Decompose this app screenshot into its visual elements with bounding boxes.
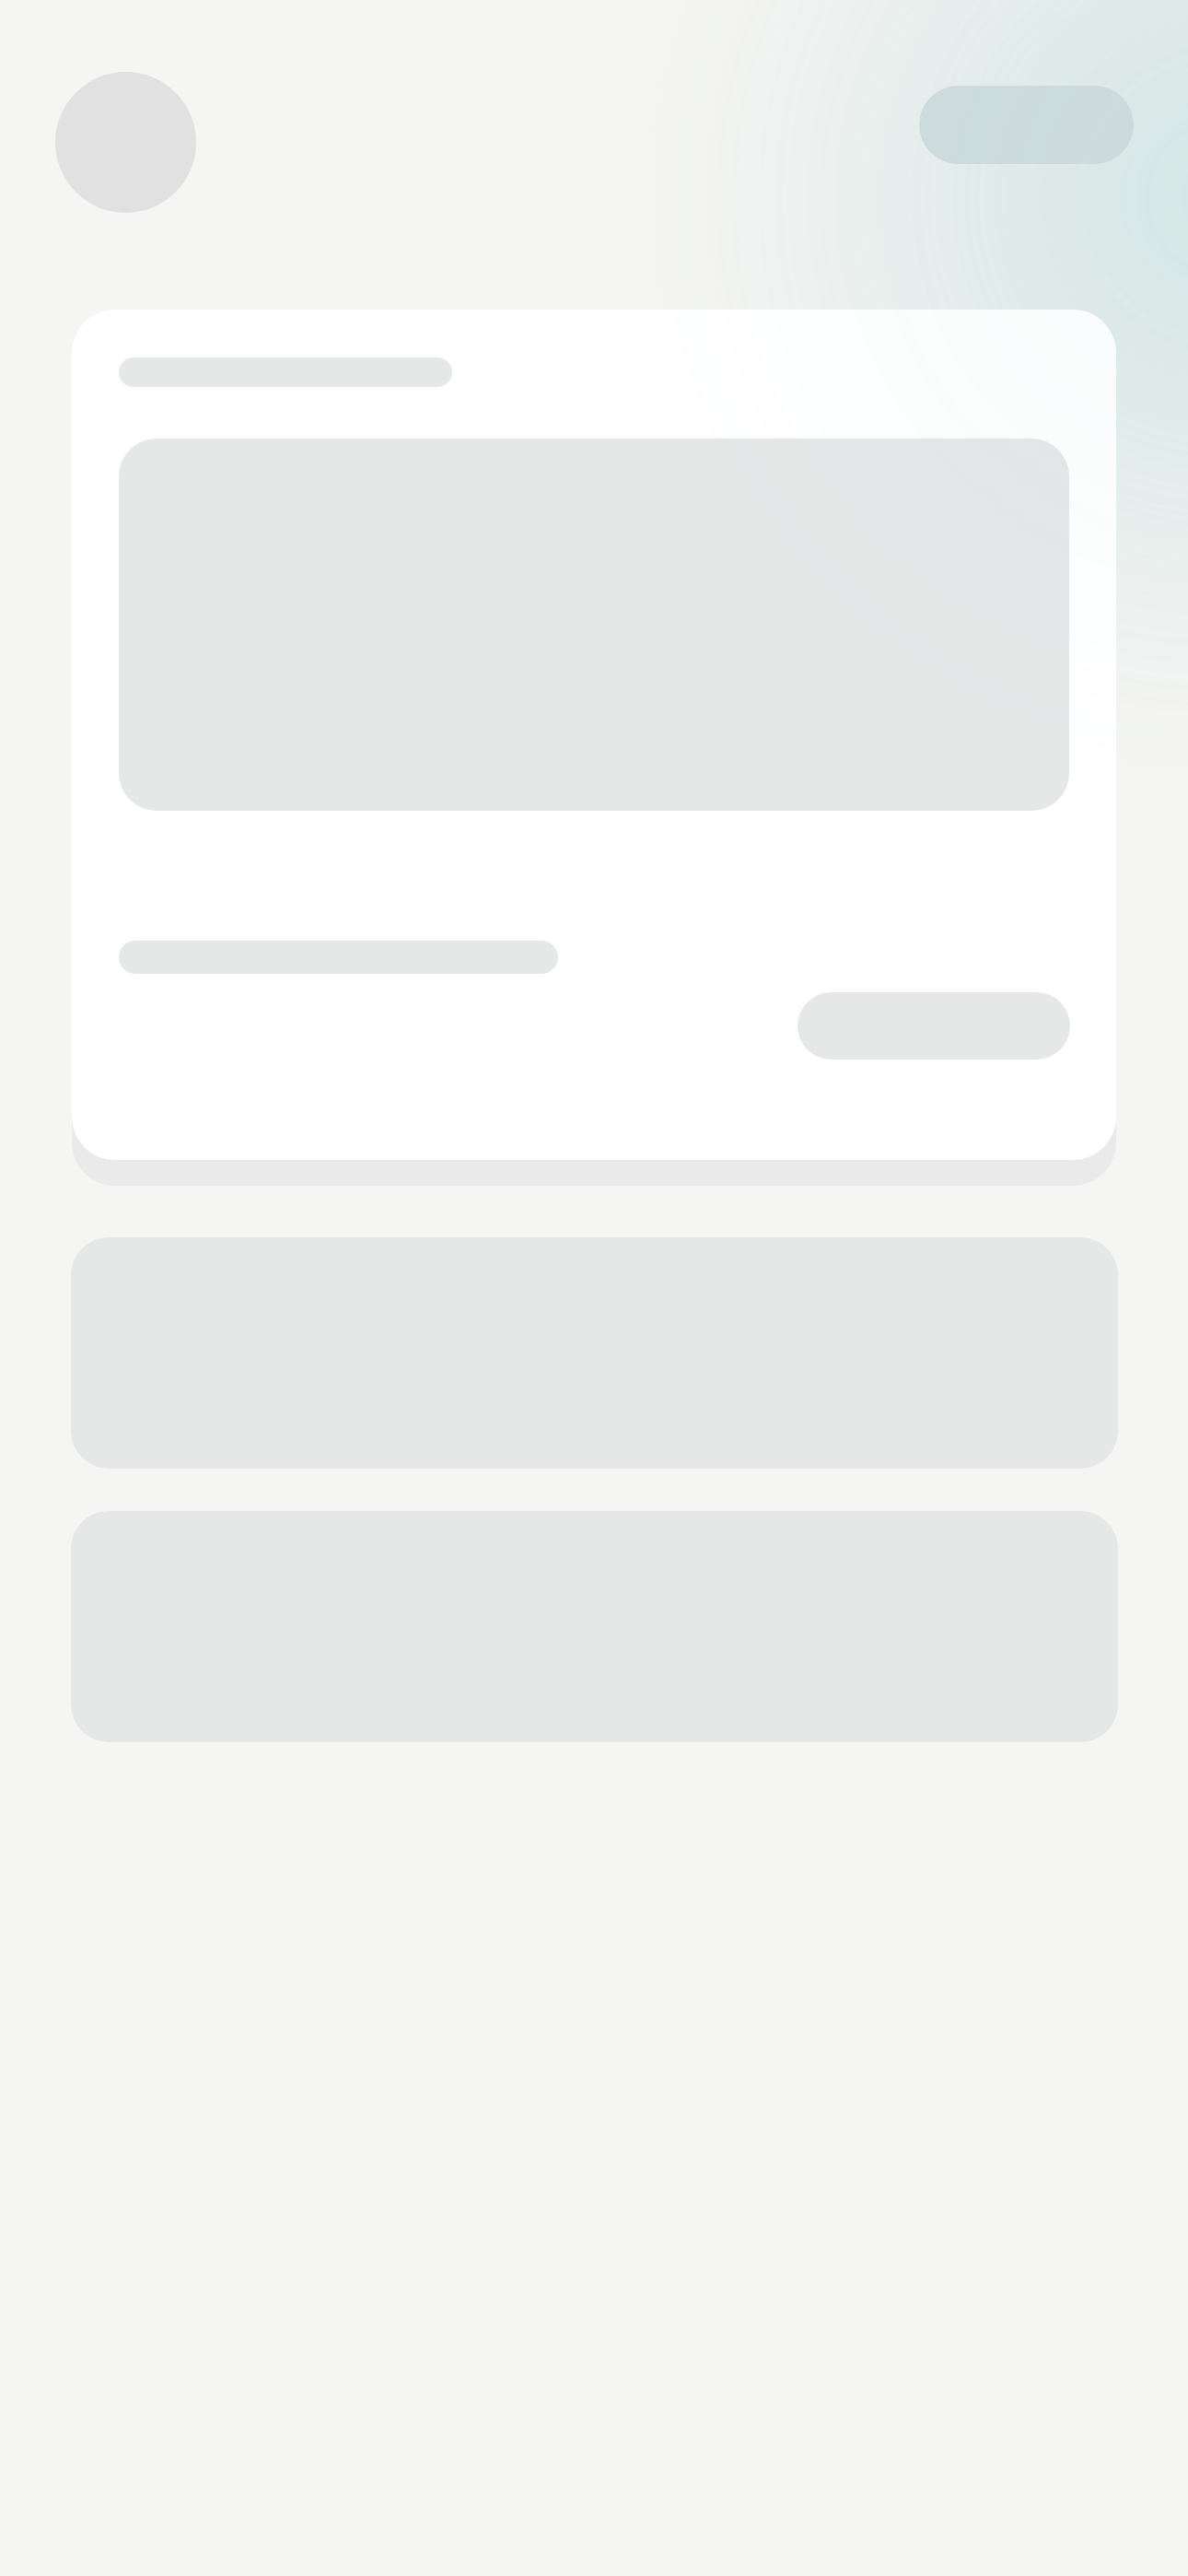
button[interactable]: Action (919, 86, 1134, 164)
button[interactable]: Primary action (798, 992, 1070, 1060)
button[interactable]: Profile (55, 72, 196, 213)
button[interactable]: Featured card (72, 310, 1116, 1160)
